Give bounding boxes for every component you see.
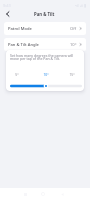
button[interactable]: Pan & Tilt Angle bbox=[4, 38, 86, 51]
staticText: 9:41 bbox=[3, 3, 11, 8]
staticText: Pan & Tilt bbox=[34, 11, 55, 17]
button[interactable]: Patrol Mode bbox=[4, 22, 86, 35]
staticText: Off bbox=[70, 26, 77, 32]
button[interactable]: Back bbox=[2, 8, 13, 19]
staticText: Set how many degrees the camera will mov… bbox=[10, 53, 77, 61]
staticText: Patrol Mode bbox=[8, 26, 32, 32]
staticText: 10° bbox=[43, 72, 49, 76]
staticText: Pan & Tilt Angle bbox=[8, 42, 39, 48]
staticText: 15° bbox=[69, 72, 75, 76]
staticText: •ıl ⊿ ▮ bbox=[75, 3, 87, 8]
staticText: 5° bbox=[15, 72, 19, 76]
staticText: 10° bbox=[70, 42, 77, 48]
button[interactable] bbox=[10, 83, 82, 89]
